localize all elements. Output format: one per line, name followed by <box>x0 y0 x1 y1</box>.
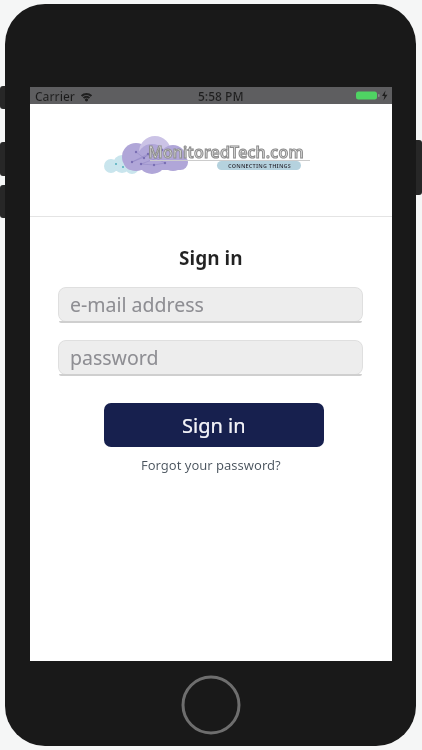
staticText: MonitoredTech.com <box>148 141 304 163</box>
staticText: Sign in <box>182 412 246 439</box>
staticText: Sign in <box>179 245 243 271</box>
button[interactable]: e-mail address <box>58 287 363 322</box>
staticText: password <box>70 344 159 371</box>
staticText: e-mail address <box>70 291 204 318</box>
staticText: Carrier <box>35 88 75 104</box>
button[interactable]: Forgot your password? <box>141 456 281 474</box>
button[interactable]: Sign in <box>104 403 324 447</box>
staticText: 5:58 PM <box>198 88 244 104</box>
staticText: CONNECTING THINGS <box>228 162 291 169</box>
button[interactable]: password <box>58 340 363 375</box>
staticText: MonitoredTech.com <box>148 141 304 163</box>
